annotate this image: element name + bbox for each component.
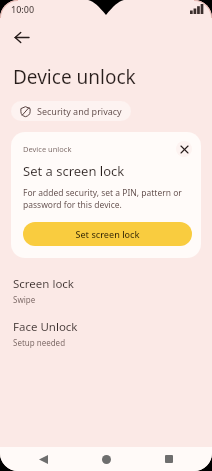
button[interactable]: Back [23, 447, 63, 471]
button[interactable]: Security and privacy [11, 101, 131, 121]
staticText: Device unlock [13, 64, 136, 90]
button[interactable]: Recent apps [149, 447, 189, 471]
button[interactable]: Set screen lock [23, 222, 192, 246]
staticText: Setup needed [13, 337, 66, 348]
button[interactable]: Dismiss [176, 141, 192, 157]
staticText: For added security, set a PIN, pattern o… [23, 187, 189, 211]
button[interactable]: Back [4, 20, 38, 54]
staticText: Swipe [13, 294, 36, 305]
other: Signal strength [190, 4, 204, 14]
staticText: 10:00 [11, 3, 35, 15]
button[interactable]: Home [86, 447, 126, 471]
staticText: Device unlock [23, 144, 176, 154]
staticText: Screen lock [13, 276, 75, 292]
button[interactable]: Face Unlock [0, 317, 212, 350]
button[interactable]: Screen lock [0, 274, 212, 307]
staticText: Face Unlock [13, 319, 78, 335]
staticText: Security and privacy [37, 105, 122, 117]
staticText: Set screen lock [75, 228, 140, 240]
staticText: Set a screen lock [23, 162, 125, 180]
